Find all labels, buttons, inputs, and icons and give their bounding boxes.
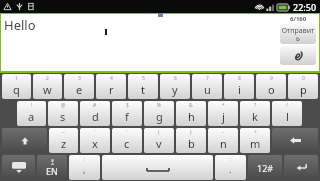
button[interactable]: ! [17,101,46,126]
staticText: # [93,102,97,109]
button[interactable]: ` [80,128,110,153]
button[interactable]: $ [112,101,142,126]
staticText: & [189,102,193,109]
button[interactable]: 4 [96,74,126,99]
staticText: x [92,136,98,151]
staticText: g [156,109,163,124]
staticText: $ [126,102,129,109]
button[interactable]: 7 [192,74,222,99]
staticText: Hello [4,16,36,34]
button[interactable]: : [69,155,100,180]
button[interactable]: @ [48,101,78,126]
staticText: 3 [78,75,81,82]
button[interactable]: - [208,128,238,153]
staticText: ' [126,129,128,136]
staticText: % [157,102,162,109]
staticText: EN [46,165,58,177]
staticText: : [230,156,232,163]
button[interactable]: Enter [284,155,318,180]
staticText: ~ [62,129,65,136]
staticText: : [84,156,86,163]
staticText: v [156,136,162,151]
button[interactable]: + [240,128,270,153]
button[interactable]: ~ [49,128,78,153]
staticText: 6 [174,75,177,82]
staticText: k [252,109,258,124]
staticText: @ [61,102,66,109]
staticText: y [172,82,178,97]
staticText: 5 [142,75,145,82]
staticText: a [28,109,35,124]
button[interactable]: ' [112,128,142,153]
staticText: / [286,102,288,109]
staticText: j [222,109,225,124]
staticText: 2 [46,75,49,82]
staticText: 8 [238,75,241,82]
staticText: r [109,82,114,97]
button[interactable]: 6 [160,74,190,99]
button[interactable]: ? [240,101,270,126]
staticText: i [238,82,241,97]
staticText: 22:50 [293,1,317,13]
staticText: ( [158,129,160,136]
button[interactable]: Language EN [37,155,67,180]
staticText: 9 [270,75,273,82]
staticText: q [13,82,20,97]
staticText: - [222,129,224,136]
staticText: n [220,136,227,151]
staticText: 4 [110,75,113,82]
button[interactable]: * [208,101,238,126]
staticText: Отправить [281,26,315,43]
button[interactable]: Backspace [272,128,318,153]
staticText: l [286,109,289,124]
button[interactable]: # [80,101,110,126]
button[interactable]: 0 [288,74,318,99]
button[interactable]: 2 [33,74,62,99]
staticText: h [188,109,195,124]
button[interactable]: 3 [64,74,94,99]
staticText: 1 [15,75,18,82]
staticText: f [125,109,129,124]
button[interactable]: Space [102,155,213,180]
staticText: ! [31,102,33,109]
button[interactable]: Hide keyboard [2,155,35,180]
button[interactable]: ( [144,128,174,153]
button[interactable]: : [215,155,246,180]
button[interactable]: ) [176,128,206,153]
staticText: u [204,82,211,97]
button[interactable]: Отправить [280,24,316,44]
staticText: . [229,163,232,175]
staticText: s [60,109,66,124]
staticText: + [254,129,257,136]
staticText: t [141,82,145,97]
button[interactable]: Shift [2,128,47,153]
staticText: e [76,82,83,97]
button[interactable]: Attach [280,46,316,65]
staticText: 6/160 [290,15,307,23]
staticText: * [222,102,225,109]
button[interactable]: 8 [224,74,254,99]
staticText: c [124,136,130,151]
staticText: o [268,82,275,97]
staticText: ? [254,102,257,109]
staticText: , [83,163,86,175]
staticText: 0 [302,75,305,82]
staticText: 7 [206,75,209,82]
button[interactable]: / [272,101,302,126]
button[interactable]: 1 [2,74,31,99]
staticText: w [43,82,52,97]
staticText: ` [94,129,96,136]
button[interactable]: & [176,101,206,126]
button[interactable]: Numbers and symbols [248,155,282,180]
button[interactable]: 5 [128,74,158,99]
staticText: ) [190,129,192,136]
staticText: m [250,136,261,151]
staticText: p [300,82,307,97]
staticText: z [61,136,67,151]
staticText: 12# [257,162,274,174]
button[interactable]: 9 [256,74,286,99]
staticText: d [92,109,99,124]
button[interactable]: % [144,101,174,126]
staticText: b [188,136,195,151]
